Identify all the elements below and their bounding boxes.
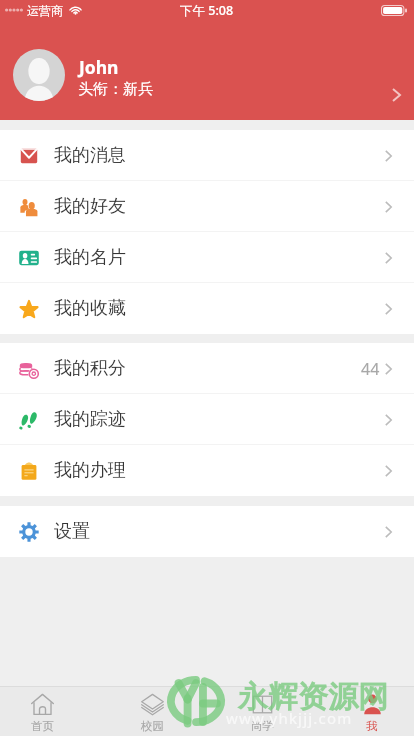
staticText: 我的办理	[54, 459, 126, 482]
button[interactable]: 我的消息	[0, 130, 414, 181]
button[interactable]: 设置	[0, 506, 414, 557]
button[interactable]: 我的积分	[0, 343, 414, 394]
staticText: 我的积分	[54, 357, 126, 380]
staticText: 我的踪迹	[54, 408, 126, 431]
button[interactable]: 校园	[116, 687, 188, 736]
staticText: www.yhkjjj.com	[226, 708, 353, 728]
staticText: 我的好友	[54, 195, 126, 218]
button[interactable]: 我的收藏	[0, 283, 414, 334]
staticText: 运营商	[27, 3, 63, 18]
button[interactable]: 尚学	[226, 687, 298, 736]
staticText: 我的消息	[54, 144, 126, 167]
staticText: 头衔：新兵	[78, 80, 153, 99]
button[interactable]: 我的名片	[0, 232, 414, 283]
staticText: 尚学	[251, 719, 274, 733]
button[interactable]: 我的好友	[0, 181, 414, 232]
staticText: 首页	[31, 719, 54, 733]
button[interactable]: 首页	[6, 687, 78, 736]
staticText: 44	[361, 358, 380, 380]
staticText: 下午 5:08	[180, 2, 234, 19]
staticText: 我的收藏	[54, 297, 126, 320]
button[interactable]: 我的办理	[0, 445, 414, 496]
staticText: 我的名片	[54, 246, 126, 269]
button[interactable]: 我	[336, 687, 408, 736]
button[interactable]: 我的踪迹	[0, 394, 414, 445]
staticText: 校园	[141, 719, 164, 733]
staticText: 永辉资源网	[238, 678, 388, 716]
staticText: 我	[366, 719, 378, 733]
staticText: 设置	[54, 520, 90, 543]
button[interactable]: John	[0, 20, 414, 120]
staticText: John	[79, 55, 119, 79]
